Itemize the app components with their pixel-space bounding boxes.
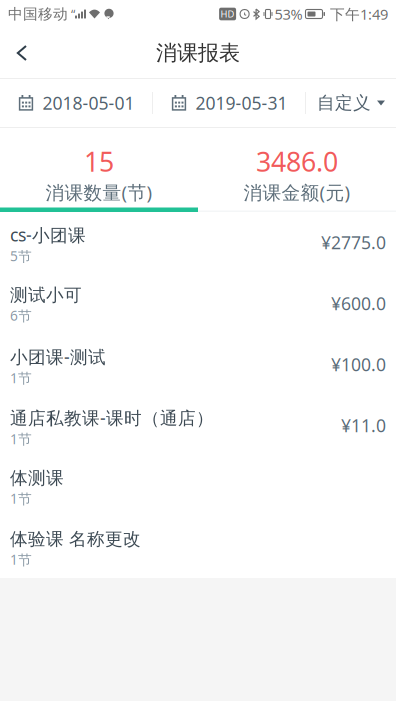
staticText: 53% xyxy=(274,4,302,24)
button[interactable]: 自定义 xyxy=(306,79,396,127)
staticText: ¥600.0 xyxy=(331,291,386,315)
button[interactable]: 体验课 名称更改 xyxy=(0,517,396,578)
button[interactable]: Back xyxy=(0,28,44,78)
button[interactable]: 15 xyxy=(0,128,198,212)
button[interactable]: 体测课 xyxy=(0,456,396,517)
staticText: 15 xyxy=(84,143,114,179)
staticText: 1节 xyxy=(10,369,32,387)
staticText: ¥11.0 xyxy=(341,413,386,437)
button[interactable]: 2019-05-31 xyxy=(153,79,305,127)
button[interactable]: 2018-05-01 xyxy=(0,79,152,127)
staticText: HD xyxy=(221,8,235,20)
staticText: cs-小团课 xyxy=(10,223,86,247)
button[interactable]: cs-小团课 xyxy=(0,212,396,273)
staticText: 消课金额(元) xyxy=(243,179,350,205)
staticText: 1节 xyxy=(10,430,32,448)
staticText: 2019-05-31 xyxy=(195,91,287,115)
staticText: 1节 xyxy=(10,489,32,508)
staticText: 2018-05-01 xyxy=(42,91,134,115)
staticText: ¥100.0 xyxy=(331,352,386,376)
button[interactable]: 通店私教课-课时（通店） xyxy=(0,395,396,456)
staticText: 5节 xyxy=(10,247,32,265)
staticText: 中国移动 xyxy=(8,5,68,23)
staticText: 小团课-测试 xyxy=(10,345,106,369)
staticText: 通店私教课-课时（通店） xyxy=(10,406,214,430)
staticText: 消课数量(节) xyxy=(45,179,152,205)
staticText: 消课报表 xyxy=(156,40,240,66)
staticText: 体测课 xyxy=(10,467,64,489)
staticText: 自定义 xyxy=(317,92,371,114)
staticText: 3486.0 xyxy=(256,143,338,179)
staticText: “ xyxy=(71,6,75,22)
staticText: 下午1:49 xyxy=(330,4,388,24)
staticText: 测试小可 xyxy=(10,284,82,306)
button[interactable]: 小团课-测试 xyxy=(0,334,396,395)
staticText: ¥2775.0 xyxy=(321,230,386,254)
staticText: 6节 xyxy=(10,306,32,325)
button[interactable]: 3486.0 xyxy=(198,128,396,212)
button[interactable]: 测试小可 xyxy=(0,273,396,334)
staticText: 体验课 名称更改 xyxy=(10,528,141,550)
staticText: 1节 xyxy=(10,550,32,569)
